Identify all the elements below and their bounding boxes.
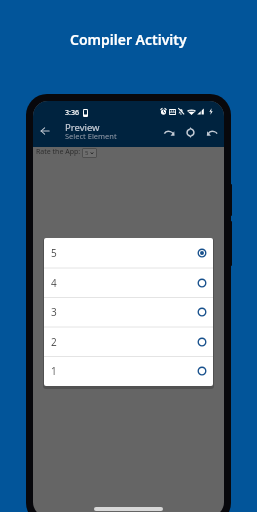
button[interactable]: Undo <box>163 127 174 138</box>
button[interactable]: 1 <box>44 356 213 386</box>
staticText: Preview <box>65 121 100 134</box>
button[interactable]: Redo <box>207 127 218 138</box>
staticText: 1 <box>51 364 57 378</box>
button[interactable]: 5 <box>82 148 97 158</box>
button[interactable]: 2 <box>44 327 213 357</box>
staticText: Compiler Activity <box>70 30 187 49</box>
staticText: 5 <box>85 149 89 157</box>
button[interactable]: Back <box>39 125 51 137</box>
button[interactable]: Refresh <box>185 127 196 138</box>
staticText: Select Element <box>65 131 117 141</box>
staticText: Rate the App: <box>36 147 81 157</box>
staticText: 3 <box>51 305 57 319</box>
staticText: 3:36 <box>65 108 79 118</box>
button[interactable]: 3 <box>44 297 213 327</box>
staticText: 2 <box>51 335 57 349</box>
staticText: 4 <box>51 276 57 290</box>
staticText: 5 <box>51 246 57 260</box>
button[interactable]: 5 <box>44 238 213 268</box>
button[interactable]: 4 <box>44 268 213 298</box>
